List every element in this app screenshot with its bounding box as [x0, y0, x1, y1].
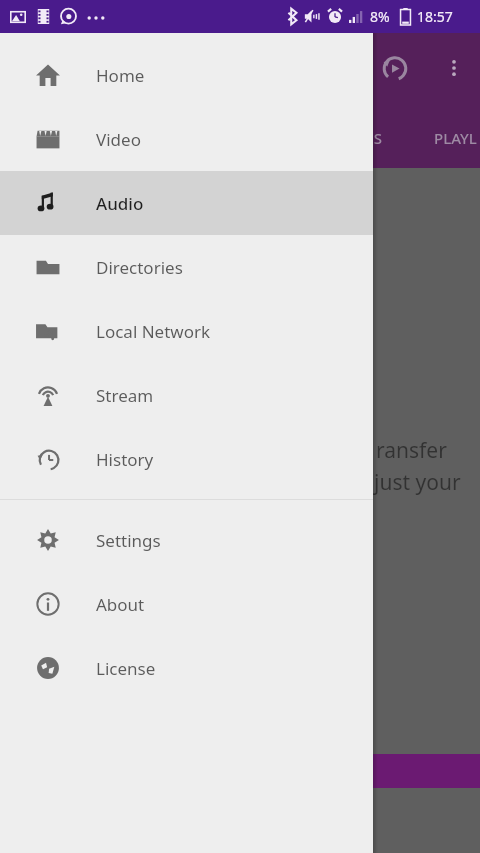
button[interactable]: Playback history: [372, 46, 418, 90]
staticText: ransfer: [376, 436, 447, 465]
staticText: About: [96, 593, 145, 616]
staticText: 18:57: [417, 7, 453, 26]
staticText: Home: [96, 64, 145, 87]
button[interactable]: Local Network: [0, 299, 373, 363]
staticText: RES: [356, 128, 383, 148]
staticText: Audio: [96, 192, 144, 215]
button[interactable]: License: [0, 636, 373, 700]
staticText: 8%: [370, 7, 390, 26]
staticText: just your: [374, 468, 461, 497]
staticText: Video: [96, 128, 141, 151]
staticText: History: [96, 448, 154, 471]
button[interactable]: Home: [0, 43, 373, 107]
staticText: Settings: [96, 529, 161, 552]
staticText: Stream: [96, 384, 154, 407]
button[interactable]: Settings: [0, 508, 373, 572]
button[interactable]: Video: [0, 107, 373, 171]
staticText: Local Network: [96, 320, 211, 343]
button[interactable]: Audio: [0, 171, 373, 235]
button[interactable]: About: [0, 572, 373, 636]
staticText: PLAYL: [434, 128, 477, 148]
button[interactable]: Stream: [0, 363, 373, 427]
button[interactable]: More options: [432, 46, 476, 90]
staticText: Directories: [96, 256, 183, 279]
staticText: License: [96, 657, 156, 680]
button[interactable]: [370, 754, 480, 788]
button[interactable]: History: [0, 427, 373, 491]
button[interactable]: Directories: [0, 235, 373, 299]
